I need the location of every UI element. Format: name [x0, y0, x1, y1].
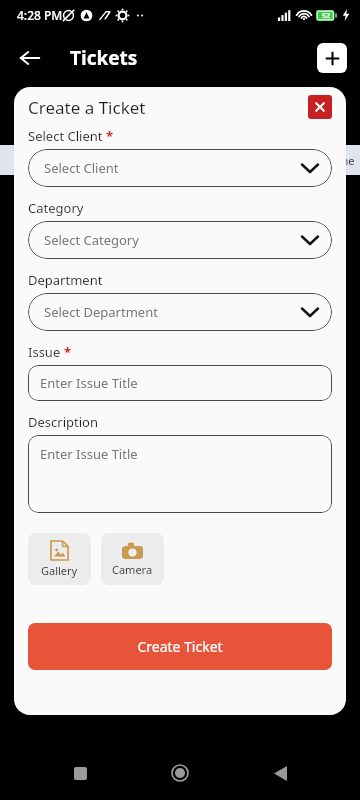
staticText: Select Client	[44, 159, 119, 177]
staticText: 4:28 PM	[17, 7, 63, 23]
button[interactable]: Camera	[101, 533, 164, 585]
button[interactable]: Home	[160, 753, 200, 793]
button[interactable]: Select Client	[28, 149, 332, 187]
button[interactable]: Enter Issue Title	[28, 365, 332, 401]
staticText: Category	[28, 199, 84, 217]
staticText: Create a Ticket	[28, 96, 146, 119]
staticText: me	[338, 153, 355, 168]
staticText: Create Ticket	[137, 637, 223, 656]
staticText: Enter Issue Title	[40, 445, 138, 463]
button[interactable]: Close	[308, 95, 332, 119]
staticText: Select Client	[28, 127, 103, 145]
staticText: Tickets	[70, 45, 138, 71]
staticText: Camera	[112, 562, 153, 577]
button[interactable]: Back	[260, 753, 300, 793]
button[interactable]: Select Category	[28, 221, 332, 259]
button[interactable]: Enter Issue Title	[28, 435, 332, 513]
staticText: 52	[322, 11, 331, 21]
staticText: Enter Issue Title	[40, 374, 138, 392]
button[interactable]: Add ticket	[317, 43, 347, 73]
staticText: Select Department	[44, 303, 158, 321]
staticText: Department	[28, 271, 103, 289]
staticText: Select Category	[44, 231, 139, 249]
staticText: Description	[28, 413, 98, 431]
staticText: Gallery	[41, 563, 78, 578]
staticText: Issue	[28, 343, 61, 361]
button[interactable]: Gallery	[28, 533, 91, 585]
button[interactable]: Recents	[60, 753, 100, 793]
staticText: *	[106, 127, 114, 145]
button[interactable]: Back	[8, 36, 52, 80]
button[interactable]: Create Ticket	[28, 623, 332, 670]
button[interactable]: Select Department	[28, 293, 332, 331]
staticText: *	[64, 343, 72, 361]
